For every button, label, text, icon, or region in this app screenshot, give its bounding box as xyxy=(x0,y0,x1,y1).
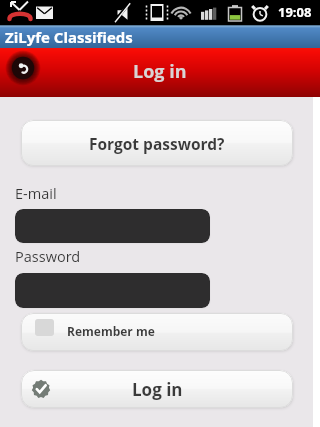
button[interactable]: Forgot password? xyxy=(21,120,293,166)
staticText: 19:08 xyxy=(278,3,312,21)
button[interactable] xyxy=(15,273,210,308)
staticText: Remember me xyxy=(67,323,155,339)
staticText: E-mail xyxy=(15,184,57,204)
staticText: Log in xyxy=(133,59,187,84)
button[interactable] xyxy=(15,209,210,243)
staticText: Log in xyxy=(132,378,183,401)
staticText: Forgot password? xyxy=(89,133,225,154)
button[interactable]: Log in xyxy=(21,370,293,408)
button[interactable]: Back xyxy=(7,52,39,84)
staticText: Password xyxy=(15,247,81,267)
button[interactable]: Remember me xyxy=(21,313,293,351)
staticText: ZiLyfe Classifieds xyxy=(5,27,133,47)
